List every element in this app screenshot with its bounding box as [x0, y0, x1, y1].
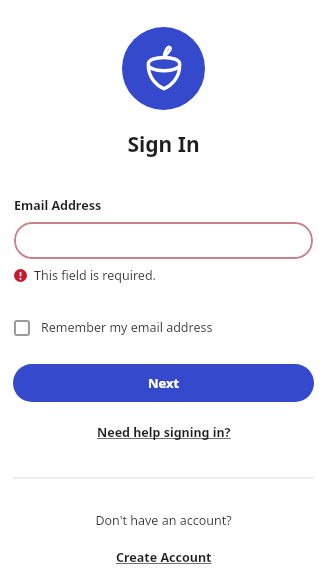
staticText: Need help signing in? — [97, 424, 231, 441]
button[interactable]: Create Account — [116, 549, 212, 566]
button[interactable]: Next — [13, 364, 314, 402]
staticText: Sign In — [127, 130, 200, 159]
staticText: Email Address — [14, 197, 102, 214]
staticText: Don't have an account? — [95, 512, 232, 529]
button[interactable]: Need help signing in? — [97, 424, 231, 441]
staticText: This field is required. — [34, 267, 156, 284]
button[interactable]: Email Address input — [14, 222, 313, 259]
staticText: Create Account — [116, 549, 212, 566]
button[interactable]: Remember my email address — [14, 319, 313, 336]
staticText: Next — [148, 374, 180, 392]
staticText: Remember my email address — [41, 319, 213, 336]
